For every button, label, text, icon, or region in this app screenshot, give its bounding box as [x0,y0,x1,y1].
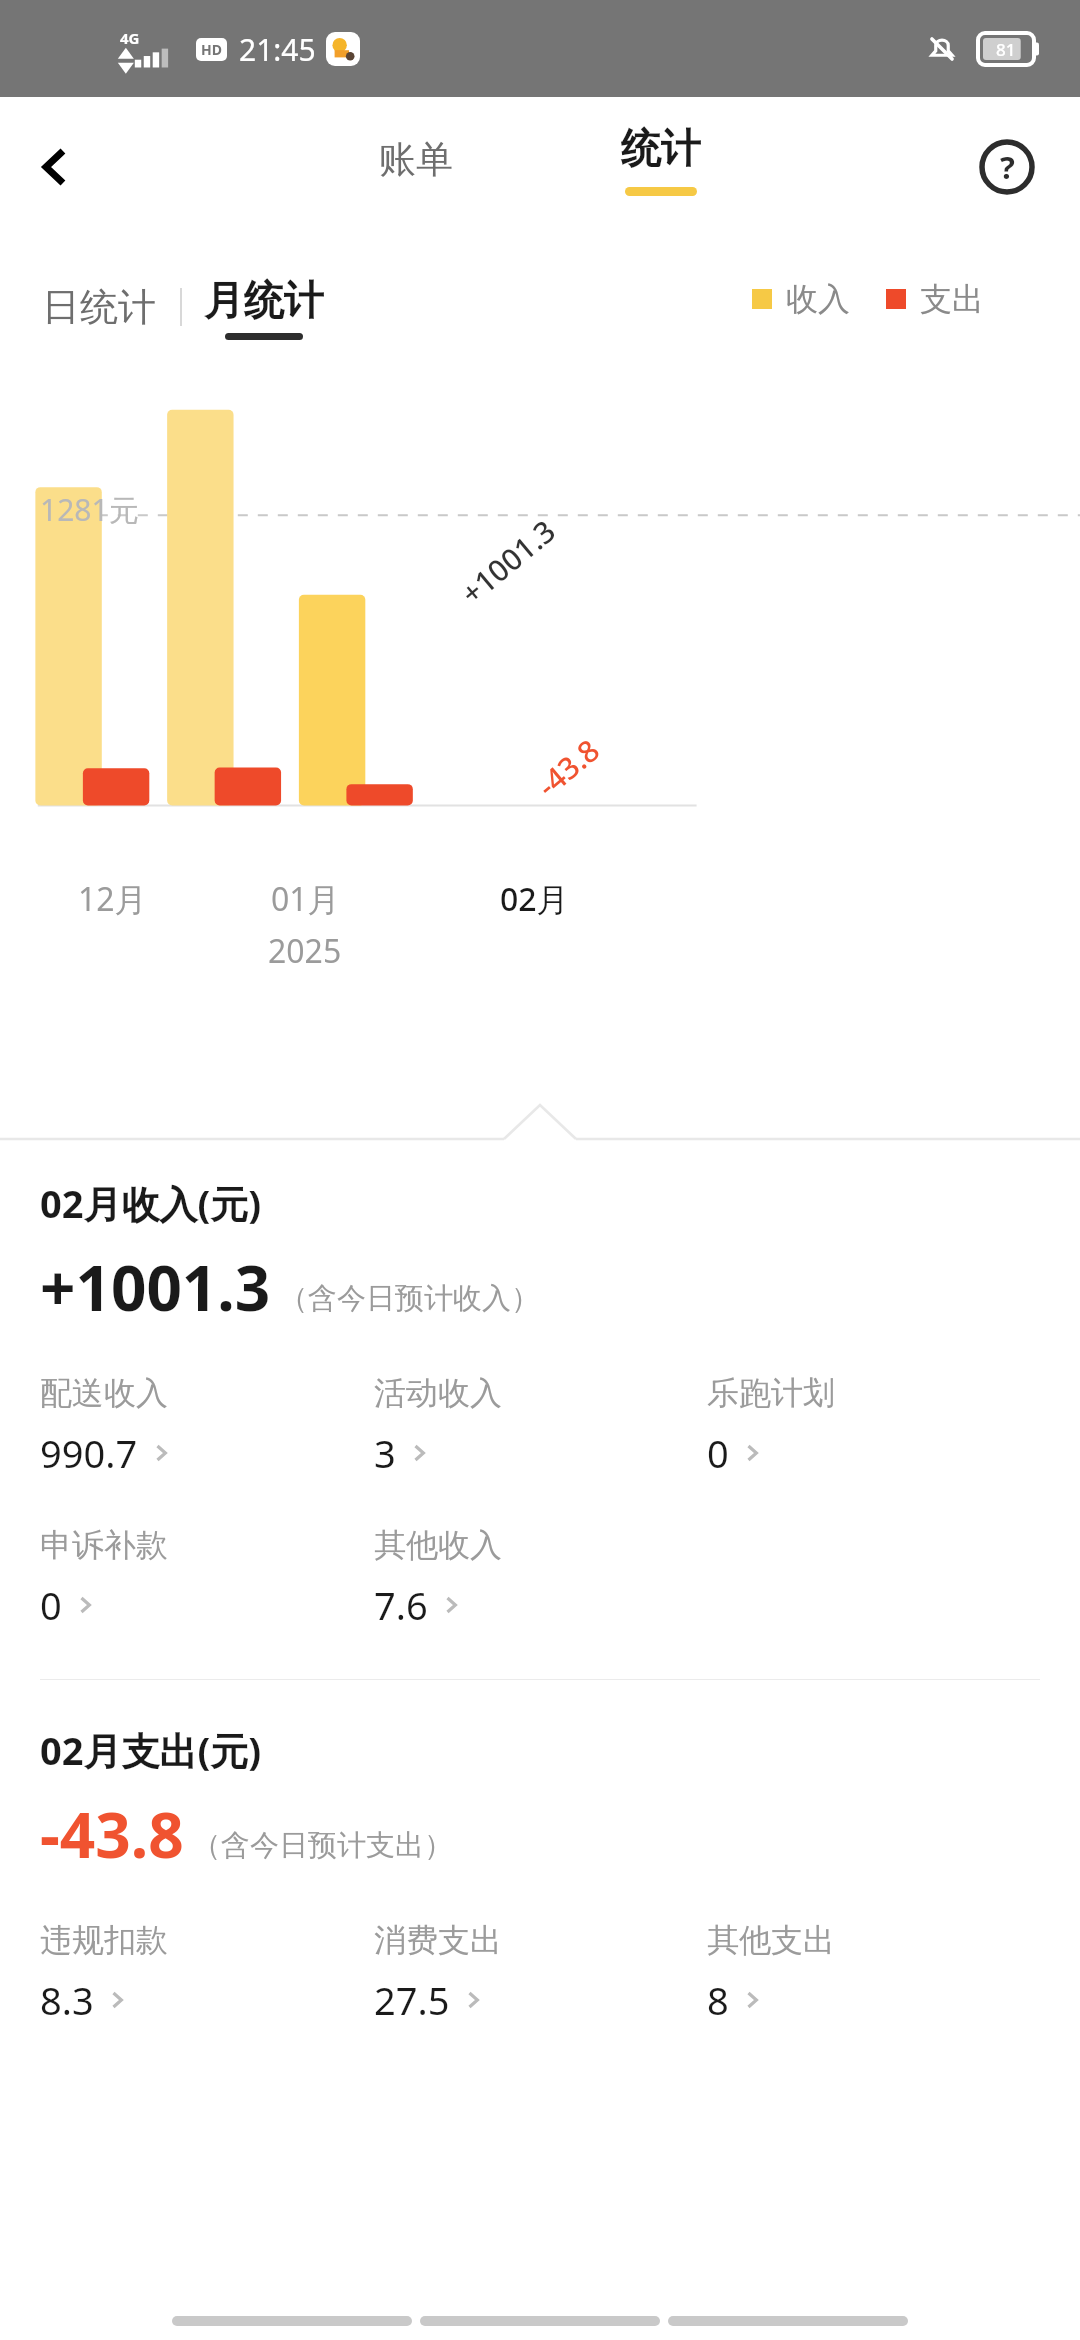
button[interactable]: 消费支出 [374,1920,707,2026]
staticText: 81 [996,38,1016,61]
staticText: 27.5 [374,1974,450,2026]
staticText: +1001.3 [40,1245,271,1329]
staticText: 账单 [379,136,453,183]
button[interactable]: Help [972,132,1042,202]
staticText: 02月收入(元) [40,1177,262,1229]
button[interactable]: 违规扣款 [40,1920,374,2026]
staticText: 消费支出 [374,1920,502,1960]
staticText: 收入 [786,279,850,319]
staticText: 统计 [621,123,701,173]
button[interactable]: 活动收入 [374,1373,707,1479]
staticText: 支出 [920,279,984,319]
button[interactable]: 乐跑计划 [707,1373,1040,1479]
button[interactable]: 账单 [349,126,483,193]
staticText: +1001.3 [452,510,564,613]
staticText: 3 [374,1427,396,1479]
staticText: HD [201,40,222,59]
staticText: 8 [707,1974,729,2026]
staticText: 1281元 [40,489,139,530]
staticText: 02月支出(元) [40,1724,262,1776]
staticText: 月统计 [204,275,324,325]
staticText: 7.6 [374,1579,428,1631]
staticText: 0 [40,1579,62,1631]
staticText: 其他支出 [707,1920,835,1960]
staticText: 其他收入 [374,1525,502,1565]
staticText: -43.8 [40,1792,184,1876]
staticText: 02月 [500,877,569,921]
staticText: 8.3 [40,1974,94,2026]
staticText: （含今日预计支出） [192,1827,453,1864]
staticText: 21:45 [239,29,316,70]
staticText: 乐跑计划 [707,1373,835,1413]
staticText: （含今日预计收入） [279,1280,540,1317]
button[interactable]: 配送收入 [40,1373,374,1479]
staticText: 日统计 [42,283,156,331]
staticText: 4G [120,28,140,48]
button[interactable]: 统计 [591,123,731,196]
button[interactable]: 日统计 [40,271,158,343]
button[interactable]: Back [18,131,90,203]
staticText: ? [1000,146,1015,188]
staticText: 配送收入 [40,1373,168,1413]
staticText: 01月 [271,877,340,921]
button[interactable]: 其他收入 [374,1525,707,1631]
staticText: 违规扣款 [40,1920,168,1960]
staticText: 990.7 [40,1427,138,1479]
staticText: 活动收入 [374,1373,502,1413]
staticText: 12月 [78,877,147,921]
staticText: -43.8 [528,729,608,806]
staticText: 2025 [268,929,342,973]
button[interactable]: 月统计 [204,275,324,340]
button[interactable]: 其他支出 [707,1920,1040,2026]
staticText: 0 [707,1427,729,1479]
button[interactable]: 申诉补款 [40,1525,374,1631]
staticText: 申诉补款 [40,1525,168,1565]
